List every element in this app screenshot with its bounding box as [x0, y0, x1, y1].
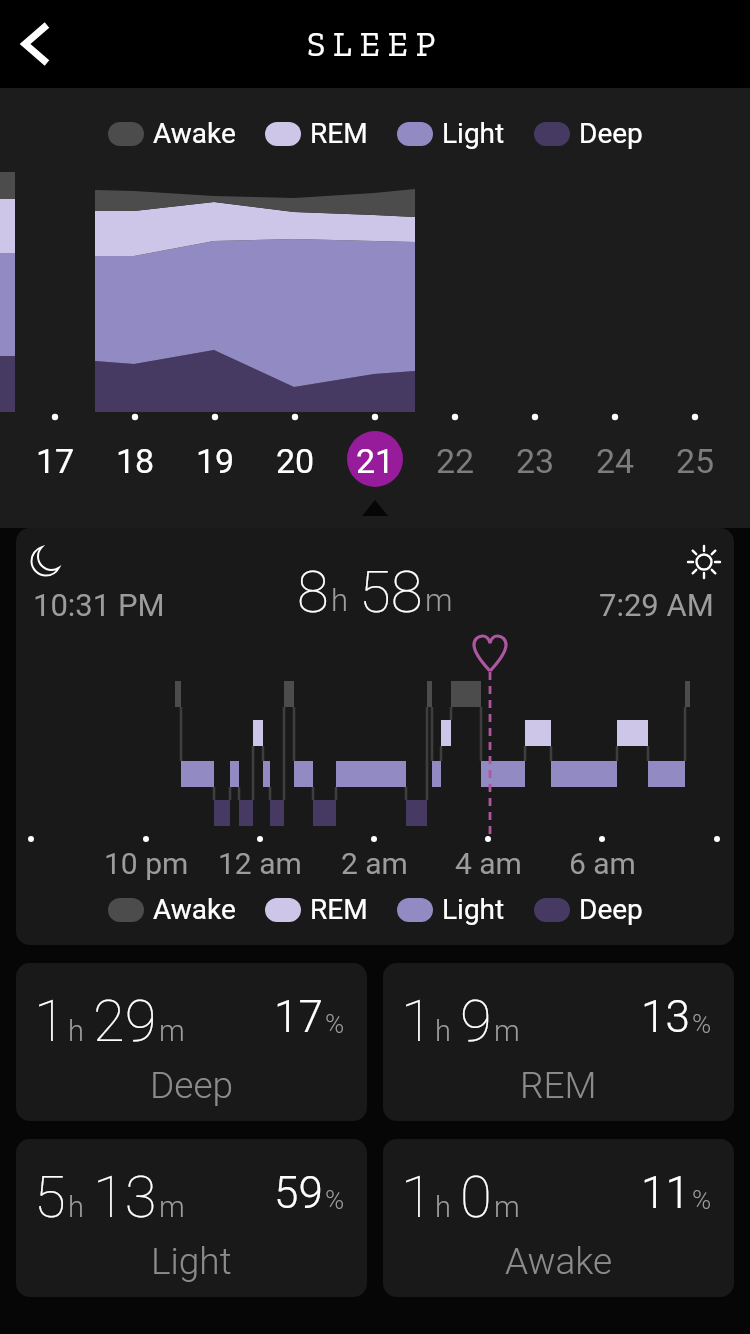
staticText: Awake [153, 893, 236, 926]
staticText: 20 [276, 441, 315, 479]
staticText: % [325, 1185, 345, 1215]
staticText: 2 am [341, 846, 408, 880]
staticText: 19 [196, 441, 235, 479]
staticText: 17 [274, 991, 323, 1043]
button[interactable]: 5 [16, 1139, 367, 1297]
staticText: Light [442, 893, 505, 926]
staticText: m [494, 1014, 520, 1048]
staticText: 13 [93, 1163, 157, 1231]
button[interactable]: 23 [495, 441, 575, 479]
button[interactable]: 1 [16, 963, 367, 1121]
staticText: 7:29 AM [599, 587, 714, 623]
staticText: h [331, 582, 349, 618]
staticText: 21 [356, 441, 395, 479]
staticText: Light [442, 117, 505, 150]
staticText: REM [310, 117, 368, 150]
staticText: 59 [274, 1167, 323, 1219]
staticText: 25 [676, 441, 715, 479]
button[interactable]: 22 [415, 441, 495, 479]
staticText: 9 [460, 987, 492, 1055]
staticText: m [425, 582, 453, 618]
staticText: SLEEP [307, 24, 444, 65]
staticText: 1 [401, 1163, 433, 1231]
button[interactable]: 1 [383, 963, 734, 1121]
button[interactable]: 18 [95, 441, 175, 479]
staticText: 23 [516, 441, 555, 479]
staticText: 10 pm [104, 846, 189, 880]
staticText: Awake [153, 117, 236, 150]
staticText: m [159, 1014, 185, 1048]
staticText: 11 [641, 1167, 690, 1219]
staticText: m [494, 1190, 520, 1224]
staticText: 13 [641, 991, 690, 1043]
button[interactable]: 20 [255, 441, 335, 479]
staticText: 22 [436, 441, 475, 479]
staticText: h [435, 1014, 451, 1048]
staticText: % [692, 1185, 712, 1215]
staticText: Light [151, 1240, 232, 1283]
staticText: 5 [34, 1163, 66, 1231]
button[interactable]: 24 [575, 441, 655, 479]
staticText: Awake [505, 1240, 613, 1283]
staticText: Deep [579, 117, 643, 150]
staticText: % [692, 1009, 712, 1039]
button[interactable]: 1 [383, 1139, 734, 1297]
button[interactable]: 19 [175, 441, 255, 479]
button[interactable]: 17 [15, 441, 95, 479]
staticText: 8 [297, 558, 329, 626]
staticText: 4 am [455, 846, 522, 880]
staticText: 0 [460, 1163, 492, 1231]
staticText: h [68, 1014, 84, 1048]
staticText: 17 [36, 441, 75, 479]
staticText: h [435, 1190, 451, 1224]
staticText: h [68, 1190, 84, 1224]
staticText: Deep [579, 893, 643, 926]
button[interactable]: 25 [655, 441, 735, 479]
staticText: 12 am [218, 846, 302, 880]
staticText: 24 [596, 441, 635, 479]
staticText: Deep [150, 1064, 234, 1107]
staticText: 1 [34, 987, 66, 1055]
staticText: % [325, 1009, 345, 1039]
staticText: REM [310, 893, 368, 926]
staticText: 6 am [569, 846, 636, 880]
staticText: m [159, 1190, 185, 1224]
staticText: 29 [93, 987, 157, 1055]
button[interactable]: 21 [335, 441, 415, 479]
staticText: 1 [401, 987, 433, 1055]
staticText: 10:31 PM [33, 587, 165, 623]
staticText: 58 [359, 558, 423, 626]
button[interactable] [4, 10, 68, 78]
staticText: 18 [116, 441, 155, 479]
staticText: REM [520, 1064, 597, 1107]
